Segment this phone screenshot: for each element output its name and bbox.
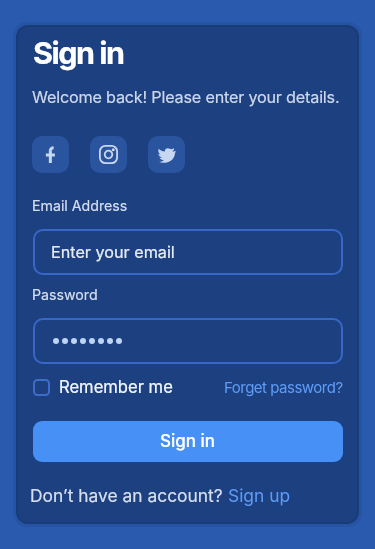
button[interactable] bbox=[32, 136, 69, 173]
staticText: Welcome back! Please enter your details. bbox=[32, 87, 340, 107]
staticText: Forget password? bbox=[224, 378, 343, 396]
staticText: Email Address bbox=[32, 197, 128, 214]
staticText: Remember me bbox=[59, 377, 173, 397]
button[interactable] bbox=[148, 136, 185, 173]
button[interactable]: Forget password? bbox=[224, 378, 343, 396]
staticText: Sign up bbox=[228, 485, 291, 506]
button[interactable] bbox=[33, 318, 343, 364]
staticText: Don’t have an account? bbox=[30, 485, 228, 506]
staticText: Sign in bbox=[160, 431, 216, 452]
staticText: Password bbox=[32, 286, 98, 303]
staticText: Sign in bbox=[33, 34, 124, 71]
button[interactable]: Remember me bbox=[33, 377, 173, 397]
button[interactable]: Sign in bbox=[33, 421, 343, 462]
button[interactable]: Sign up bbox=[228, 485, 291, 506]
button[interactable] bbox=[90, 136, 127, 173]
button[interactable]: Enter your email bbox=[33, 229, 343, 275]
staticText: Enter your email bbox=[51, 242, 175, 262]
